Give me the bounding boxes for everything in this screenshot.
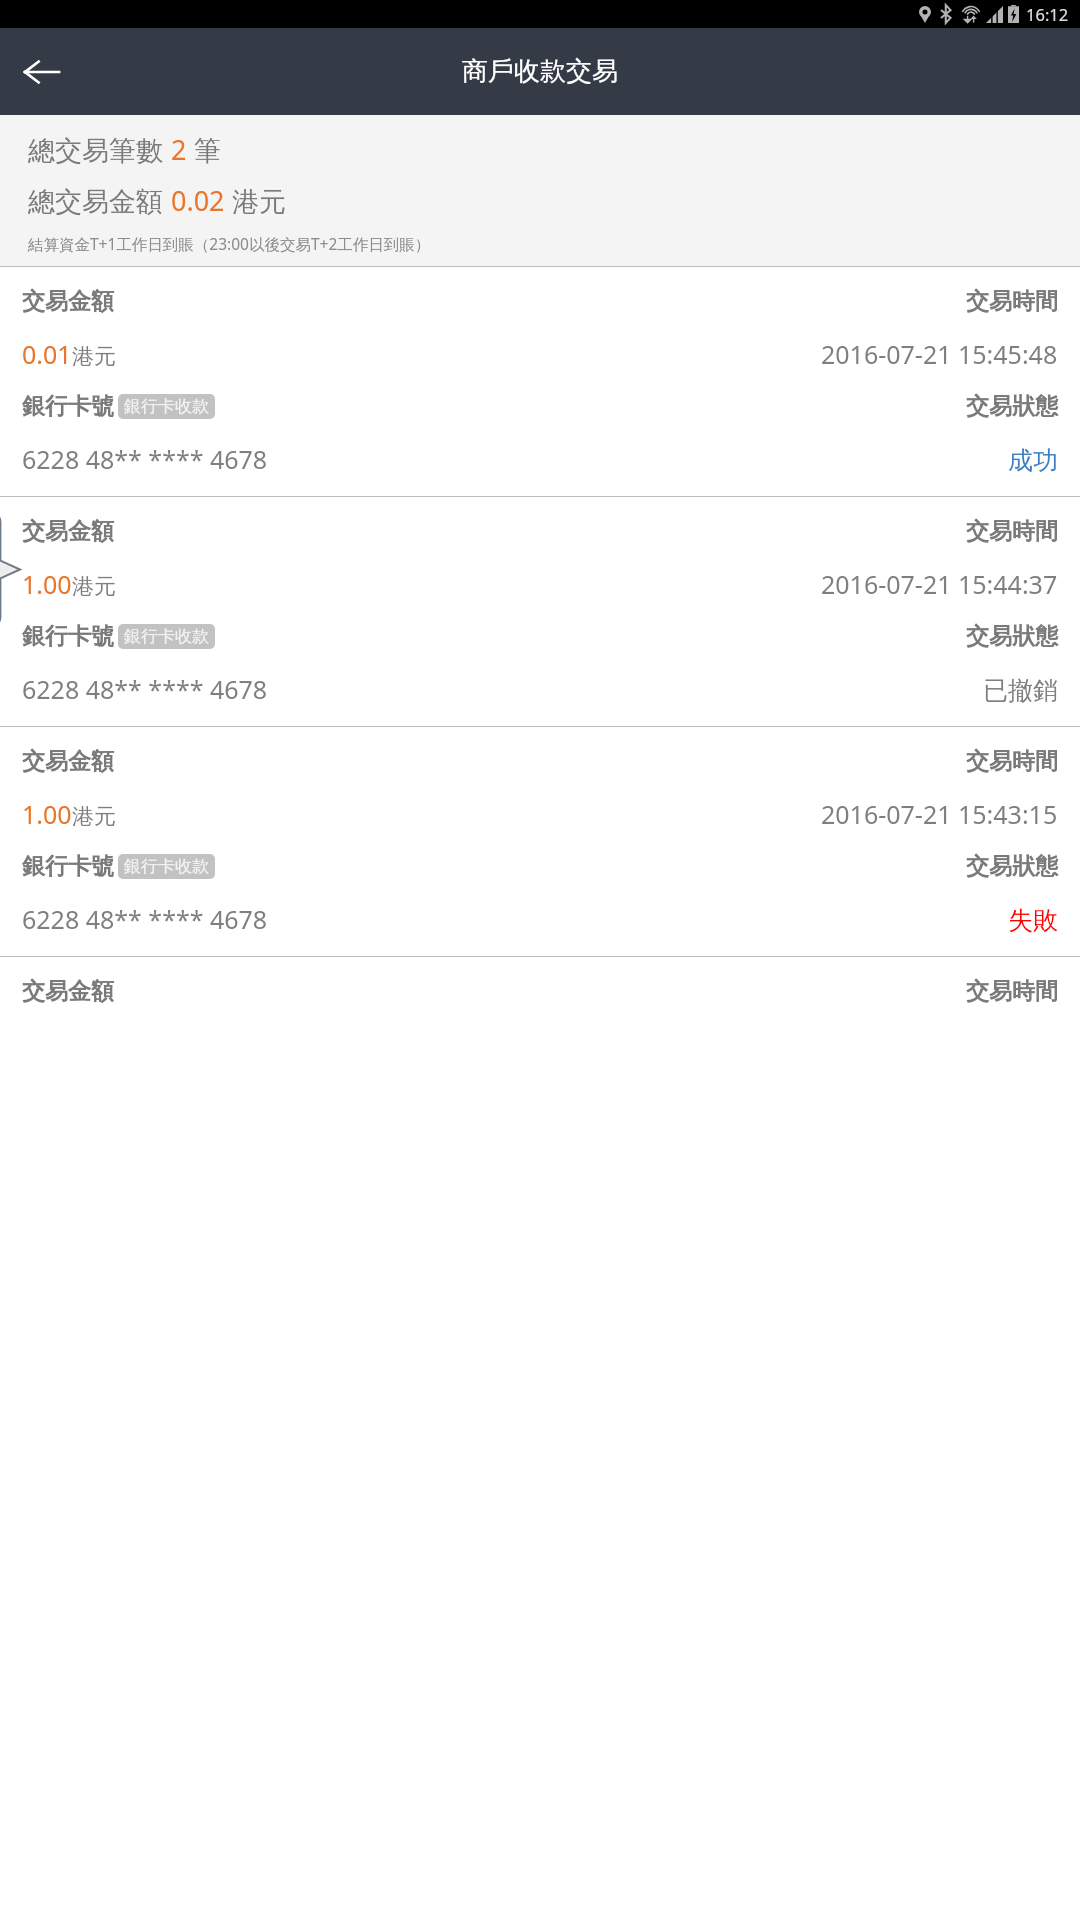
staticText: 銀行卡號 bbox=[22, 852, 114, 881]
staticText: 2016-07-21 15:44:37 bbox=[821, 567, 1058, 601]
staticText: 交易金額 bbox=[22, 747, 114, 776]
staticText: 2016-07-21 15:43:15 bbox=[821, 797, 1058, 831]
staticText: 交易時間 bbox=[966, 747, 1058, 776]
staticText: 總交易筆數 bbox=[28, 131, 171, 168]
staticText: 1.00 bbox=[22, 797, 72, 831]
staticText: 筆 bbox=[187, 131, 222, 168]
staticText: 2016-07-21 15:45:48 bbox=[821, 337, 1058, 371]
staticText: 交易時間 bbox=[966, 977, 1058, 1006]
staticText: 交易金額 bbox=[22, 517, 114, 546]
staticText: 2 bbox=[171, 131, 187, 168]
staticText: 港元 bbox=[72, 343, 116, 371]
staticText: 已撤銷 bbox=[983, 675, 1058, 706]
staticText: 6228 48** **** 4678 bbox=[22, 902, 268, 936]
staticText: 6228 48** **** 4678 bbox=[22, 672, 268, 706]
staticText: 失敗 bbox=[1008, 905, 1058, 936]
staticText: 交易狀態 bbox=[966, 852, 1058, 881]
staticText: 銀行卡收款 bbox=[124, 626, 209, 647]
staticText: 交易狀態 bbox=[966, 622, 1058, 651]
staticText: 銀行卡號 bbox=[22, 392, 114, 421]
staticText: 成功 bbox=[1008, 445, 1058, 476]
staticText: 結算資金T+1工作日到賬（23:00以後交易T+2工作日到賬） bbox=[28, 233, 431, 254]
staticText: 港元 bbox=[72, 573, 116, 601]
staticText: 商戶收款交易 bbox=[462, 55, 618, 88]
staticText: 銀行卡收款 bbox=[124, 396, 209, 417]
staticText: 總交易金額 bbox=[28, 182, 171, 219]
staticText: 0.01 bbox=[22, 337, 72, 371]
staticText: 交易狀態 bbox=[966, 392, 1058, 421]
staticText: 交易金額 bbox=[22, 977, 114, 1006]
button[interactable]: 交易金額 bbox=[0, 497, 1080, 726]
staticText: 港元 bbox=[225, 182, 287, 219]
button[interactable]: Back bbox=[6, 36, 78, 108]
staticText: 銀行卡號 bbox=[22, 622, 114, 651]
staticText: 交易時間 bbox=[966, 287, 1058, 316]
staticText: 0.02 bbox=[171, 182, 225, 219]
staticText: 交易金額 bbox=[22, 287, 114, 316]
staticText: 6228 48** **** 4678 bbox=[22, 442, 268, 476]
staticText: 銀行卡收款 bbox=[124, 856, 209, 877]
staticText: 港元 bbox=[72, 803, 116, 831]
button[interactable]: 交易金額 bbox=[0, 727, 1080, 956]
button[interactable]: 交易金額 bbox=[0, 957, 1080, 1026]
staticText: 交易時間 bbox=[966, 517, 1058, 546]
staticText: 16:12 bbox=[1026, 3, 1069, 25]
staticText: 1.00 bbox=[22, 567, 72, 601]
button[interactable]: 交易金額 bbox=[0, 267, 1080, 496]
